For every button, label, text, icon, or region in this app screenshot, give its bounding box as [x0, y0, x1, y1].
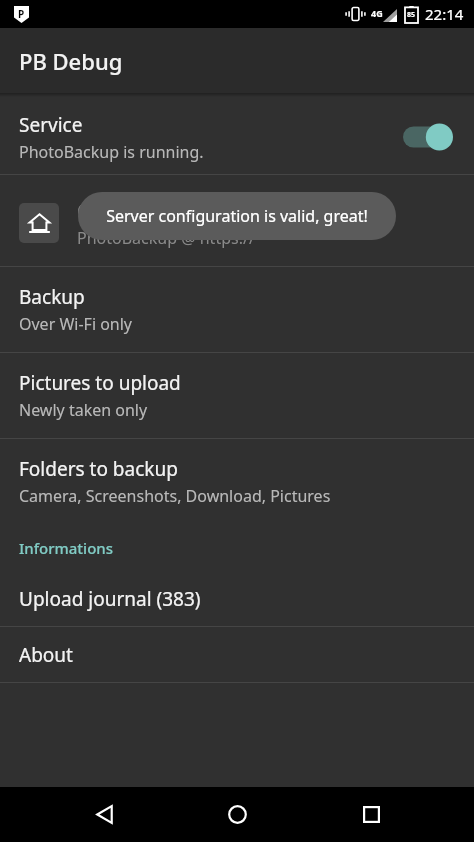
button[interactable]: Pictures to upload: [0, 353, 474, 438]
button[interactable]: Service: [0, 100, 474, 174]
staticText: Server configuration is valid, great!: [106, 205, 368, 227]
staticText: Newly taken only: [19, 399, 148, 421]
staticText: Camera, Screenshots, Download, Pictures: [19, 485, 331, 507]
staticText: Configure a server: [77, 198, 242, 224]
staticText: 4G: [371, 7, 383, 19]
staticText: PB Debug: [19, 46, 123, 76]
staticText: Informations: [19, 538, 114, 558]
staticText: Service: [19, 112, 83, 138]
button[interactable]: Backup: [0, 267, 474, 352]
staticText: Upload journal (383): [19, 586, 201, 612]
staticText: 22:14: [425, 4, 464, 24]
button[interactable]: Home: [207, 787, 267, 842]
staticText: Pictures to upload: [19, 370, 181, 396]
staticText: Backup: [19, 284, 85, 310]
button[interactable]: Recents: [341, 787, 401, 842]
staticText: PhotoBackup is running.: [19, 141, 204, 163]
button[interactable]: Folders to backup: [0, 439, 474, 524]
button[interactable]: Back: [74, 787, 134, 842]
staticText: About: [19, 642, 73, 668]
button[interactable]: Upload journal (383): [0, 571, 474, 626]
button[interactable]: Configure a server: [0, 180, 474, 266]
staticText: PhotoBackup @ https://: [77, 227, 255, 249]
staticText: 85: [407, 10, 416, 20]
staticText: Folders to backup: [19, 456, 178, 482]
button[interactable]: About: [0, 627, 474, 682]
staticText: P: [18, 7, 25, 21]
staticText: Over Wi-Fi only: [19, 313, 133, 335]
button[interactable]: Service toggle: [403, 120, 455, 154]
